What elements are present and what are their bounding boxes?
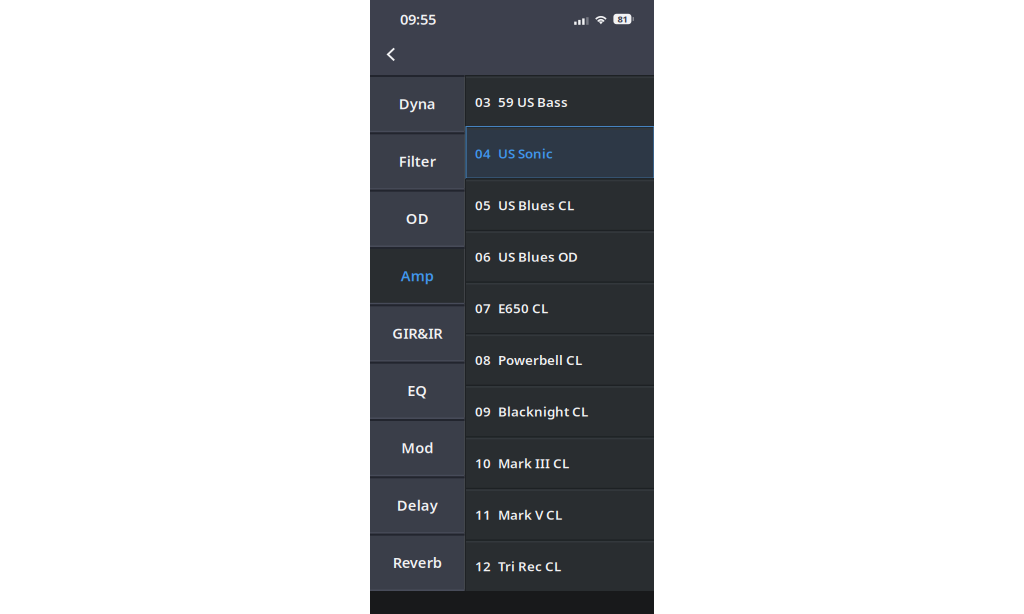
button[interactable]: 10	[466, 436, 654, 488]
staticText: Blacknight CL	[498, 402, 588, 420]
button[interactable]: 03	[466, 75, 654, 127]
button[interactable]: 04	[466, 127, 654, 178]
staticText: 10	[475, 454, 491, 472]
button[interactable]: 09	[466, 385, 654, 436]
button[interactable]: Filter	[370, 132, 464, 190]
staticText: 07	[475, 299, 491, 317]
staticText: Filter	[399, 151, 436, 171]
staticText: Mark V CL	[498, 506, 562, 523]
staticText: 09	[475, 402, 491, 420]
staticText: 04	[475, 144, 491, 162]
button[interactable]: 06	[466, 230, 654, 281]
staticText: 06	[475, 248, 491, 265]
button[interactable]: 12	[466, 539, 654, 591]
staticText: 03	[475, 93, 491, 111]
staticText: 09:55	[400, 9, 436, 29]
button[interactable]: Delay	[370, 476, 464, 534]
staticText: Dyna	[399, 94, 436, 113]
staticText: Powerbell CL	[498, 351, 582, 369]
button[interactable]: 11	[466, 488, 654, 539]
staticText: Reverb	[393, 553, 442, 572]
staticText: Amp	[401, 266, 434, 285]
staticText: US Blues OD	[498, 248, 578, 265]
staticText: Tri Rec CL	[498, 557, 561, 575]
button[interactable]: EQ	[370, 362, 464, 419]
staticText: US Blues CL	[498, 196, 574, 214]
staticText: OD	[406, 209, 429, 228]
button[interactable]: Amp	[370, 247, 464, 304]
staticText: 11	[475, 506, 491, 523]
button[interactable]: 08	[466, 333, 654, 385]
button[interactable]: Dyna	[370, 75, 464, 132]
staticText: GIR&IR	[392, 323, 442, 343]
button[interactable]: Back	[376, 38, 406, 75]
button[interactable]: 07	[466, 281, 654, 333]
staticText: Delay	[397, 495, 438, 515]
staticText: EQ	[407, 381, 427, 400]
button[interactable]: OD	[370, 190, 464, 247]
staticText: Mod	[401, 438, 433, 457]
button[interactable]: Mod	[370, 419, 464, 476]
staticText: 05	[475, 196, 491, 214]
staticText: 59 US Bass	[498, 93, 568, 111]
staticText: 08	[475, 351, 491, 369]
staticText: 81	[617, 13, 627, 25]
button[interactable]: Reverb	[370, 534, 464, 591]
button[interactable]: 05	[466, 178, 654, 230]
button[interactable]: GIR&IR	[370, 304, 464, 362]
staticText: Mark III CL	[498, 454, 569, 472]
staticText: E650 CL	[498, 299, 548, 317]
staticText: 12	[475, 557, 491, 575]
staticText: US Sonic	[498, 144, 553, 162]
